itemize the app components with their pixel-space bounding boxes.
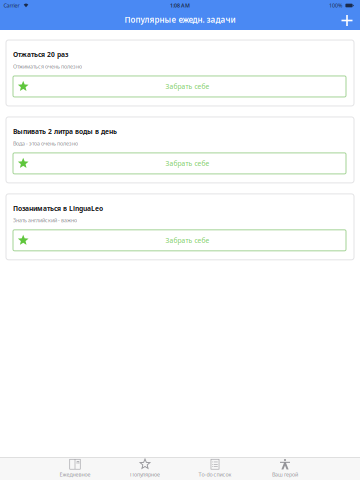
button[interactable]: Популярное: [110, 457, 180, 480]
button[interactable]: Забрать себе: [13, 76, 346, 97]
button[interactable]: Add task: [335, 12, 360, 29]
staticText: Отжаться 20 раз: [13, 50, 68, 59]
staticText: 100%: [329, 2, 342, 9]
staticText: Ваш герой: [272, 471, 298, 478]
staticText: Забрать себе: [165, 82, 209, 91]
staticText: Забрать себе: [165, 159, 209, 168]
button[interactable]: Забрать себе: [13, 153, 346, 174]
staticText: Популярное: [130, 471, 160, 478]
staticText: Забрать себе: [165, 236, 209, 245]
staticText: Выпивать 2 литра воды в день: [13, 127, 117, 136]
staticText: Знать английский - важно: [13, 217, 77, 224]
button[interactable]: Ежедневное: [40, 457, 110, 480]
staticText: Carrier: [3, 2, 19, 9]
button[interactable]: Забрать себе: [13, 230, 346, 251]
staticText: Позаниматься в LinguaLeo: [13, 204, 103, 213]
staticText: Популярные ежедн. задачи: [124, 14, 235, 25]
staticText: Ежедневное: [59, 471, 90, 478]
staticText: 1:08 AM: [170, 2, 190, 9]
button[interactable]: Ваш герой: [250, 457, 320, 480]
button[interactable]: To-do список: [180, 457, 250, 480]
staticText: To-do список: [198, 471, 231, 478]
staticText: Вода - этоа очень полезно: [13, 140, 78, 147]
staticText: Отжиматься очень полезно: [13, 63, 82, 70]
